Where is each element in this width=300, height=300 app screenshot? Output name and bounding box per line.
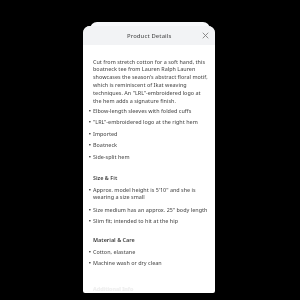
- staticText: "LRL"-embroidered logo at the right hem: [93, 118, 211, 125]
- staticText: Product Details: [127, 32, 172, 40]
- staticText: Cut from stretch cotton for a soft hand,…: [93, 58, 208, 105]
- staticText: Elbow-length sleeves with folded cuffs: [93, 107, 211, 114]
- staticText: Material & Care: [93, 236, 135, 243]
- staticText: Slim fit; intended to hit at the hip: [93, 217, 211, 224]
- button[interactable]: Close: [199, 29, 212, 42]
- staticText: Additional Info: [93, 285, 134, 292]
- staticText: Boatneck: [93, 141, 211, 148]
- staticText: Imported: [93, 130, 211, 137]
- staticText: Approx. model height is 5'10" and she is…: [93, 186, 211, 201]
- staticText: Side-split hem: [93, 153, 211, 160]
- staticText: Machine wash or dry clean: [93, 259, 211, 266]
- staticText: Size medium has an approx. 25" body leng…: [93, 206, 211, 213]
- staticText: Cotton, elastane: [93, 248, 211, 255]
- staticText: Size & Fit: [93, 174, 118, 181]
